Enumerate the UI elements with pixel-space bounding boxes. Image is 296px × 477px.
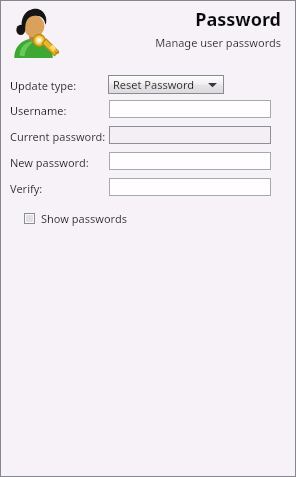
staticText: Manage user passwords (0, 35, 281, 50)
staticText: Current password: (10, 129, 106, 144)
button[interactable]: New password (109, 152, 271, 170)
staticText: Password (0, 7, 281, 32)
button[interactable]: Current password (109, 126, 271, 144)
button[interactable]: Username (109, 100, 271, 118)
button[interactable]: Reset Password (108, 75, 224, 94)
button[interactable]: Show passwords (22, 209, 129, 228)
staticText: Username: (10, 103, 67, 118)
staticText: Verify: (10, 181, 43, 196)
staticText: New password: (10, 155, 89, 170)
button[interactable]: Verify password (109, 178, 271, 196)
staticText: Show passwords (41, 211, 127, 226)
staticText: Update type: (10, 78, 77, 93)
staticText: Reset Password (113, 77, 195, 92)
